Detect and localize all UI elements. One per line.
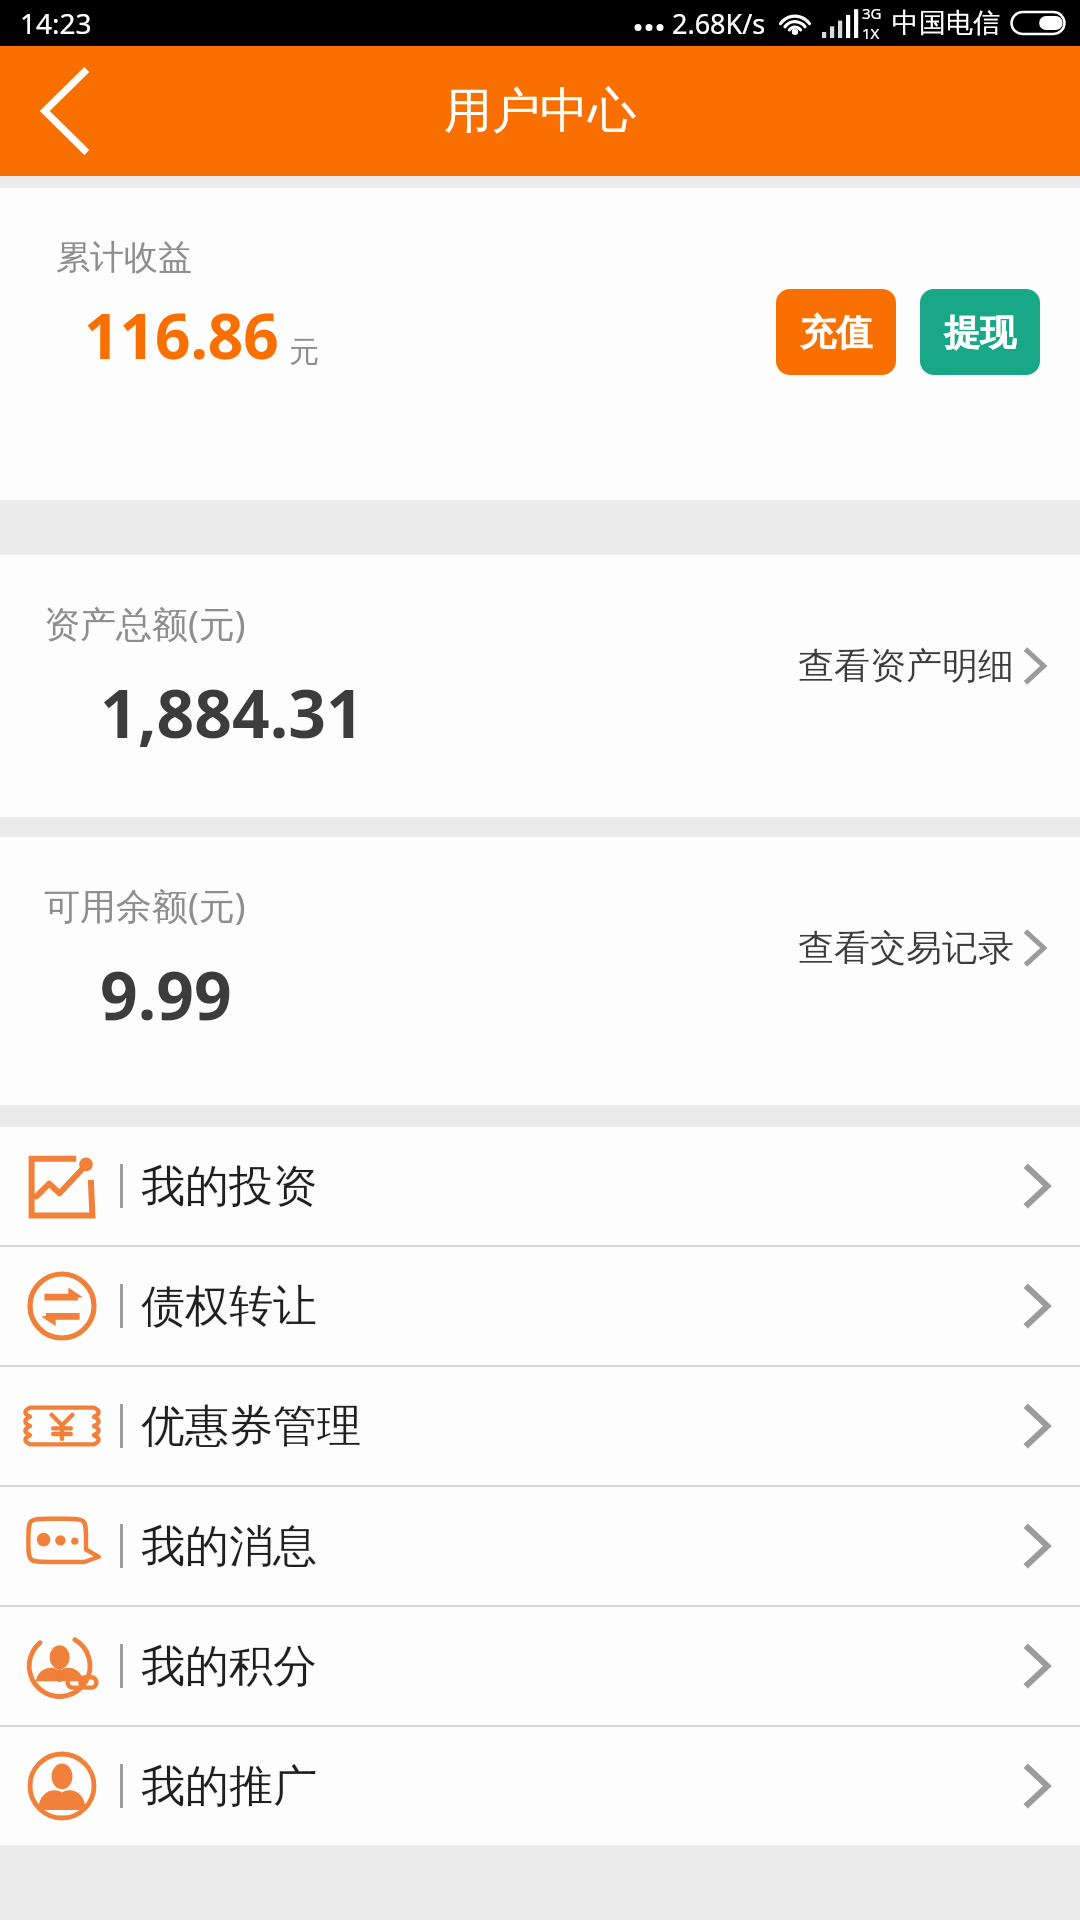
button[interactable]: 充值 — [776, 289, 896, 375]
staticText: 用户中心 — [444, 81, 636, 141]
button[interactable]: 优惠券管理 — [0, 1367, 1080, 1485]
staticText: 9.99 — [100, 949, 232, 1039]
staticText: 14:23 — [20, 4, 92, 42]
staticText: 我的推广 — [141, 1759, 317, 1814]
staticText: 可用余额(元) — [44, 881, 246, 930]
staticText: 充值 — [800, 310, 872, 355]
staticText: 中国电信 — [892, 6, 1000, 40]
staticText: 查看交易记录 — [798, 925, 1014, 970]
staticText: 1X — [862, 23, 880, 43]
button[interactable]: Back — [0, 46, 130, 176]
staticText: 116.86 — [84, 293, 279, 377]
staticText: 我的积分 — [141, 1639, 317, 1694]
staticText: 查看资产明细 — [798, 643, 1014, 688]
button[interactable]: 查看交易记录 — [798, 925, 1046, 970]
button[interactable]: 债权转让 — [0, 1247, 1080, 1365]
button[interactable]: 提现 — [920, 289, 1040, 375]
staticText: 优惠券管理 — [141, 1399, 361, 1454]
staticText: 累计收益 — [56, 236, 192, 279]
staticText: 资产总额(元) — [44, 599, 246, 648]
staticText: 2.68K/s — [672, 5, 766, 42]
button[interactable]: 我的积分 — [0, 1607, 1080, 1725]
button[interactable]: 我的投资 — [0, 1127, 1080, 1245]
button[interactable]: 我的消息 — [0, 1487, 1080, 1605]
staticText: 提现 — [944, 310, 1016, 355]
staticText: 元 — [289, 333, 319, 371]
button[interactable]: 我的推广 — [0, 1727, 1080, 1845]
button[interactable]: 查看资产明细 — [798, 643, 1046, 688]
staticText: 我的消息 — [141, 1519, 317, 1574]
staticText: 债权转让 — [141, 1279, 317, 1334]
staticText: 1,884.31 — [100, 667, 364, 757]
staticText: 我的投资 — [141, 1159, 317, 1214]
staticText: 3G — [862, 3, 882, 23]
